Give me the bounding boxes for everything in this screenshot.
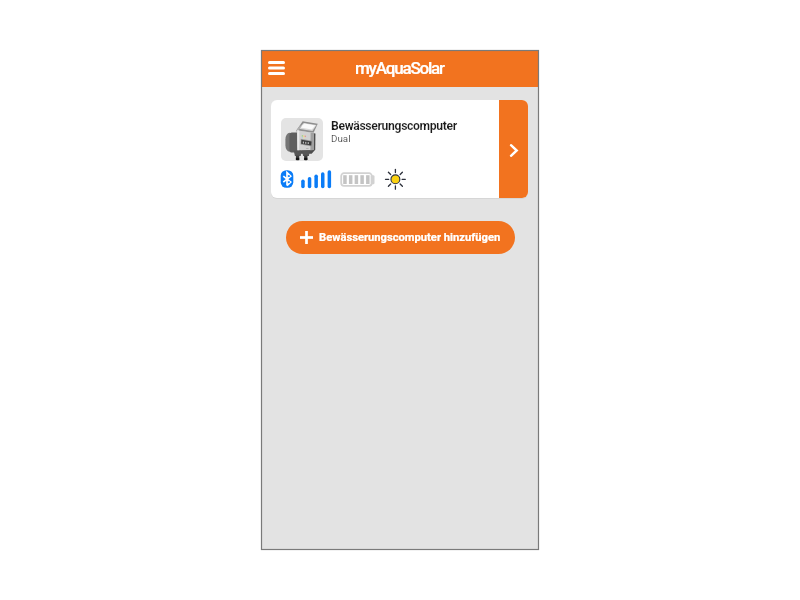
button[interactable]: Bewässerungscomputer hinzufügen [286, 221, 515, 254]
button[interactable]: Menu [262, 53, 290, 84]
button[interactable]: Bewässerungscomputer [271, 100, 499, 198]
staticText: myAquaSolar [355, 58, 444, 78]
staticText: Bewässerungscomputer [331, 119, 457, 133]
staticText: Dual [331, 133, 351, 144]
staticText: Bewässerungscomputer hinzufügen [319, 231, 501, 244]
button[interactable]: Open device details [499, 100, 528, 198]
